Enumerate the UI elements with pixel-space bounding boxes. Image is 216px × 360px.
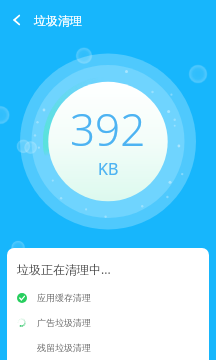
staticText: KB — [98, 158, 119, 180]
button[interactable]: Back — [0, 3, 34, 37]
button[interactable]: 广告垃圾清理 — [7, 310, 209, 335]
button[interactable]: 应用缓存清理 — [7, 285, 209, 310]
staticText: 垃圾正在清理中... — [17, 261, 111, 277]
staticText: 392 — [70, 99, 146, 159]
staticText: 垃圾清理 — [34, 13, 82, 28]
button[interactable]: 残留垃圾清理 — [7, 335, 209, 360]
staticText: 广告垃圾清理 — [37, 317, 91, 328]
staticText: 残留垃圾清理 — [37, 342, 91, 353]
staticText: 应用缓存清理 — [37, 292, 91, 303]
